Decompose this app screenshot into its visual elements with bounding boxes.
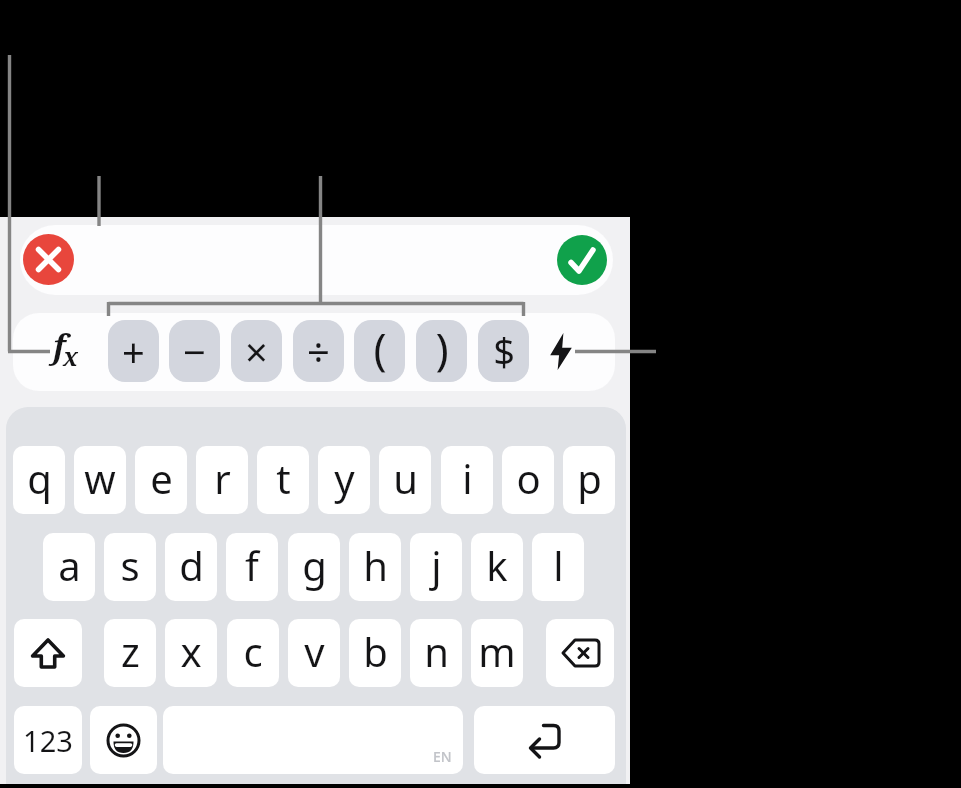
button[interactable]: [546, 619, 614, 687]
button[interactable]: l: [532, 533, 584, 601]
staticText: l: [553, 538, 564, 592]
button[interactable]: [474, 706, 615, 774]
button[interactable]: m: [471, 619, 523, 687]
button[interactable]: f: [48, 322, 90, 378]
staticText: −: [183, 324, 206, 378]
staticText: s: [120, 538, 140, 592]
staticText: w: [84, 451, 116, 505]
staticText: n: [424, 624, 449, 678]
staticText: a: [58, 538, 81, 592]
button[interactable]: [549, 333, 573, 370]
button[interactable]: (: [354, 320, 405, 382]
staticText: ×: [245, 324, 268, 378]
staticText: ÷: [307, 324, 330, 378]
staticText: e: [150, 451, 173, 505]
button[interactable]: r: [196, 446, 248, 514]
button[interactable]: $: [478, 320, 529, 382]
button[interactable]: j: [410, 533, 462, 601]
button[interactable]: ÷: [293, 320, 344, 382]
button[interactable]: s: [104, 533, 156, 601]
staticText: f: [53, 324, 66, 368]
staticText: q: [27, 451, 52, 505]
staticText: k: [486, 538, 508, 592]
button[interactable]: f: [226, 533, 278, 601]
staticText: u: [393, 451, 418, 505]
button[interactable]: d: [165, 533, 217, 601]
button[interactable]: e: [135, 446, 187, 514]
button[interactable]: z: [104, 619, 156, 687]
staticText: b: [363, 624, 388, 678]
staticText: 123: [23, 721, 73, 760]
staticText: p: [577, 451, 602, 505]
staticText: h: [363, 538, 388, 592]
staticText: i: [462, 451, 473, 505]
staticText: $: [493, 325, 515, 377]
button[interactable]: q: [13, 446, 65, 514]
button[interactable]: [90, 706, 157, 774]
button[interactable]: ×: [231, 320, 282, 382]
button[interactable]: b: [349, 619, 401, 687]
staticText: j: [431, 538, 442, 592]
staticText: o: [516, 451, 541, 505]
button[interactable]: [557, 235, 607, 285]
button[interactable]: v: [288, 619, 340, 687]
button[interactable]: w: [74, 446, 126, 514]
button[interactable]: ): [416, 320, 467, 382]
button[interactable]: o: [502, 446, 554, 514]
button[interactable]: EN: [163, 706, 463, 774]
button[interactable]: g: [288, 533, 340, 601]
button[interactable]: n: [410, 619, 462, 687]
staticText: x: [180, 624, 202, 678]
staticText: (: [373, 320, 387, 378]
button[interactable]: −: [169, 320, 220, 382]
staticText: t: [276, 451, 291, 505]
staticText: x: [63, 339, 79, 373]
staticText: z: [121, 624, 140, 678]
button[interactable]: k: [471, 533, 523, 601]
staticText: r: [214, 451, 231, 505]
button[interactable]: +: [108, 320, 159, 382]
button[interactable]: x: [165, 619, 217, 687]
staticText: +: [122, 324, 145, 378]
staticText: d: [179, 538, 204, 592]
button[interactable]: [14, 619, 82, 687]
staticText: ): [435, 320, 449, 378]
button[interactable]: 123: [14, 706, 82, 774]
button[interactable]: p: [563, 446, 615, 514]
button[interactable]: u: [379, 446, 431, 514]
staticText: EN: [433, 747, 452, 766]
staticText: m: [478, 624, 516, 678]
button[interactable]: c: [227, 619, 279, 687]
staticText: c: [243, 624, 263, 678]
button[interactable]: i: [441, 446, 493, 514]
button[interactable]: t: [257, 446, 309, 514]
button[interactable]: h: [349, 533, 401, 601]
staticText: v: [304, 624, 325, 678]
staticText: g: [302, 538, 327, 592]
button[interactable]: [23, 234, 74, 285]
button[interactable]: y: [318, 446, 370, 514]
staticText: f: [245, 538, 259, 592]
staticText: y: [334, 451, 355, 505]
button[interactable]: a: [43, 533, 95, 601]
